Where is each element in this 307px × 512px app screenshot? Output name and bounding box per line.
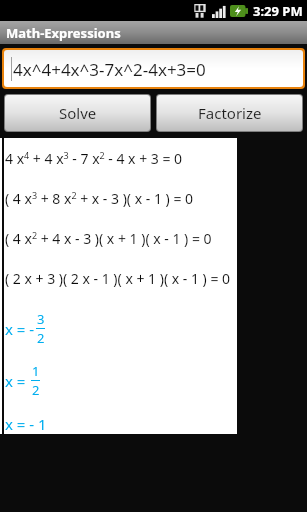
button[interactable]: Solve [5, 95, 150, 131]
staticText: 4x^4+4x^3-7x^2-4x+3=0 [13, 58, 206, 81]
staticText: 3 [37, 310, 45, 328]
staticText: 4 x4 + 4 x3 - 7 x2 - 4 x + 3 = 0 [5, 149, 183, 168]
button[interactable]: 4x^4+4x^3-7x^2-4x+3=0 [4, 50, 303, 87]
staticText: 3:29 PM [253, 2, 303, 20]
staticText: Math-Expressions [6, 24, 121, 42]
staticText: 2 [32, 381, 40, 399]
staticText: ( 4 x3 + 8 x2 + x - 3 )( x - 1 ) = 0 [5, 189, 194, 208]
staticText: Factorize [198, 103, 262, 123]
staticText: 2 [37, 329, 45, 347]
staticText: x = - [5, 319, 35, 339]
staticText: ( 4 x2 + 4 x - 3 )( x + 1 )( x - 1 ) = 0 [5, 229, 212, 248]
staticText: 1 [32, 362, 40, 380]
button[interactable]: Factorize [157, 95, 302, 131]
staticText: ( 2 x + 3 )( 2 x - 1 )( x + 1 )( x - 1 )… [5, 269, 231, 288]
staticText: Solve [59, 103, 97, 123]
staticText: x = - 1 [5, 414, 47, 434]
staticText: x = [5, 371, 30, 391]
